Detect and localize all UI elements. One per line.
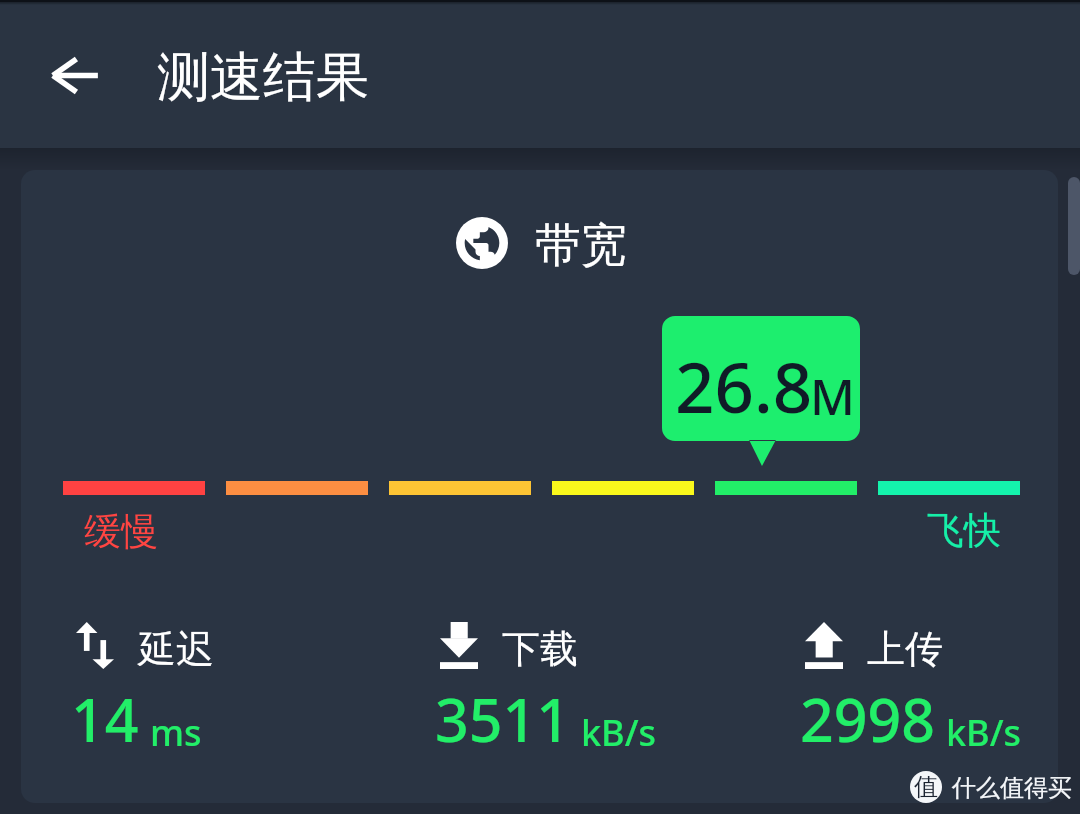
staticText: 飞快	[927, 507, 1001, 554]
staticText: 14	[71, 679, 139, 759]
button[interactable]: Back	[26, 27, 122, 123]
staticText: 3511	[435, 679, 570, 759]
staticText: 延迟	[138, 625, 214, 673]
staticText: 值	[914, 772, 938, 802]
staticText: 26.8	[675, 339, 813, 433]
staticText: 缓慢	[84, 508, 158, 555]
staticText: 带宽	[535, 217, 627, 275]
button[interactable]: 下载	[430, 612, 730, 752]
staticText: 上传	[867, 625, 943, 673]
staticText: kB/s	[946, 708, 1022, 757]
staticText: 测速结果	[157, 44, 369, 111]
staticText: M	[810, 363, 855, 430]
staticText: kB/s	[581, 708, 657, 757]
button[interactable]: 上传	[795, 612, 1058, 752]
button[interactable]: 带宽	[446, 206, 666, 280]
staticText: 什么值得买	[952, 773, 1072, 803]
staticText: 2998	[800, 679, 935, 759]
staticText: ms	[150, 708, 202, 757]
button[interactable]: 延迟	[66, 612, 366, 752]
staticText: 下载	[502, 625, 578, 673]
